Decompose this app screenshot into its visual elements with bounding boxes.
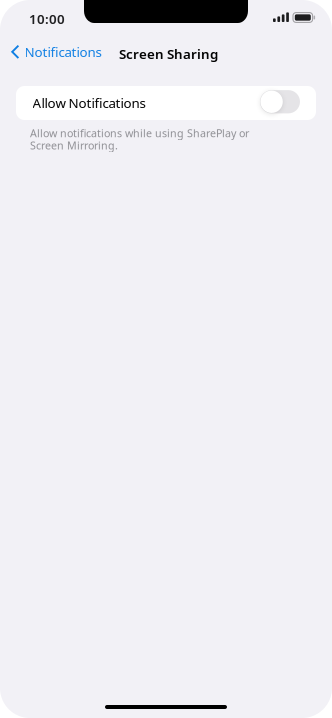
staticText: Screen Sharing — [119, 45, 218, 63]
staticText: 10:00 — [29, 10, 65, 28]
button[interactable]: Allow Notifications, off — [260, 90, 300, 113]
button[interactable]: Allow Notifications — [16, 86, 316, 120]
staticText: Notifications — [25, 43, 102, 61]
staticText: Allow Notifications — [33, 94, 146, 112]
staticText: Allow notifications while using SharePla… — [30, 126, 249, 140]
staticText: Screen Mirroring. — [30, 138, 118, 152]
button[interactable]: Notifications — [0, 36, 112, 68]
